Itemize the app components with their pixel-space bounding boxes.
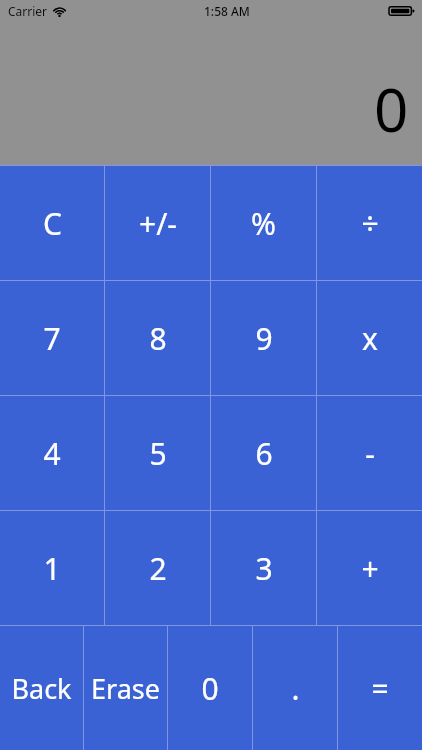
staticText: 5 — [149, 433, 167, 474]
staticText: 7 — [43, 318, 61, 359]
button[interactable]: = — [338, 626, 422, 750]
button[interactable]: C — [0, 166, 104, 280]
button[interactable]: 5 — [105, 396, 210, 510]
button[interactable]: + — [317, 511, 422, 625]
staticText: 6 — [255, 433, 273, 474]
staticText: 1 — [43, 548, 61, 589]
button[interactable]: 8 — [105, 281, 210, 395]
button[interactable]: 9 — [211, 281, 316, 395]
staticText: 8 — [149, 318, 167, 359]
staticText: Back — [11, 670, 72, 707]
button[interactable]: . — [253, 626, 337, 750]
staticText: + — [361, 548, 379, 589]
staticText: % — [251, 203, 276, 244]
staticText: 1:58 AM — [204, 3, 250, 19]
button[interactable]: 6 — [211, 396, 316, 510]
staticText: 3 — [255, 548, 273, 589]
staticText: 9 — [255, 318, 273, 359]
button[interactable]: - — [317, 396, 422, 510]
staticText: C — [43, 203, 62, 244]
button[interactable]: 3 — [211, 511, 316, 625]
button[interactable]: % — [211, 166, 316, 280]
button[interactable]: 7 — [0, 281, 104, 395]
button[interactable]: 0 — [168, 626, 252, 750]
staticText: Erase — [91, 670, 160, 707]
staticText: = — [371, 668, 389, 709]
button[interactable]: +/- — [105, 166, 210, 280]
staticText: ÷ — [361, 203, 379, 244]
button[interactable]: ÷ — [317, 166, 422, 280]
button[interactable]: Back — [0, 626, 83, 750]
staticText: 4 — [43, 433, 61, 474]
button[interactable]: 2 — [105, 511, 210, 625]
staticText: x — [362, 318, 378, 359]
staticText: +/- — [139, 203, 177, 244]
button[interactable]: 4 — [0, 396, 104, 510]
button[interactable]: Erase — [84, 626, 167, 750]
staticText: 0 — [374, 68, 409, 150]
button[interactable]: x — [317, 281, 422, 395]
staticText: - — [365, 433, 375, 474]
button[interactable]: 1 — [0, 511, 104, 625]
staticText: . — [291, 668, 300, 709]
staticText: 2 — [149, 548, 167, 589]
staticText: 0 — [201, 668, 219, 709]
staticText: Carrier — [8, 3, 48, 19]
